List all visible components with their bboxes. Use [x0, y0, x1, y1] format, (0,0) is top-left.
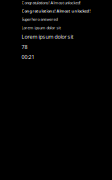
staticText: Congratulations! Almost unlocked! — [21, 0, 80, 5]
staticText: Superhero answered — [21, 17, 57, 22]
staticText: Lorem ipsum dolor sit — [21, 25, 60, 30]
staticText: 00:21 — [21, 53, 34, 60]
staticText: Congratulations! Almost unlocked! — [21, 8, 90, 14]
staticText: 78 — [21, 43, 27, 50]
staticText: Lorem ipsum dolor sit — [21, 33, 73, 40]
